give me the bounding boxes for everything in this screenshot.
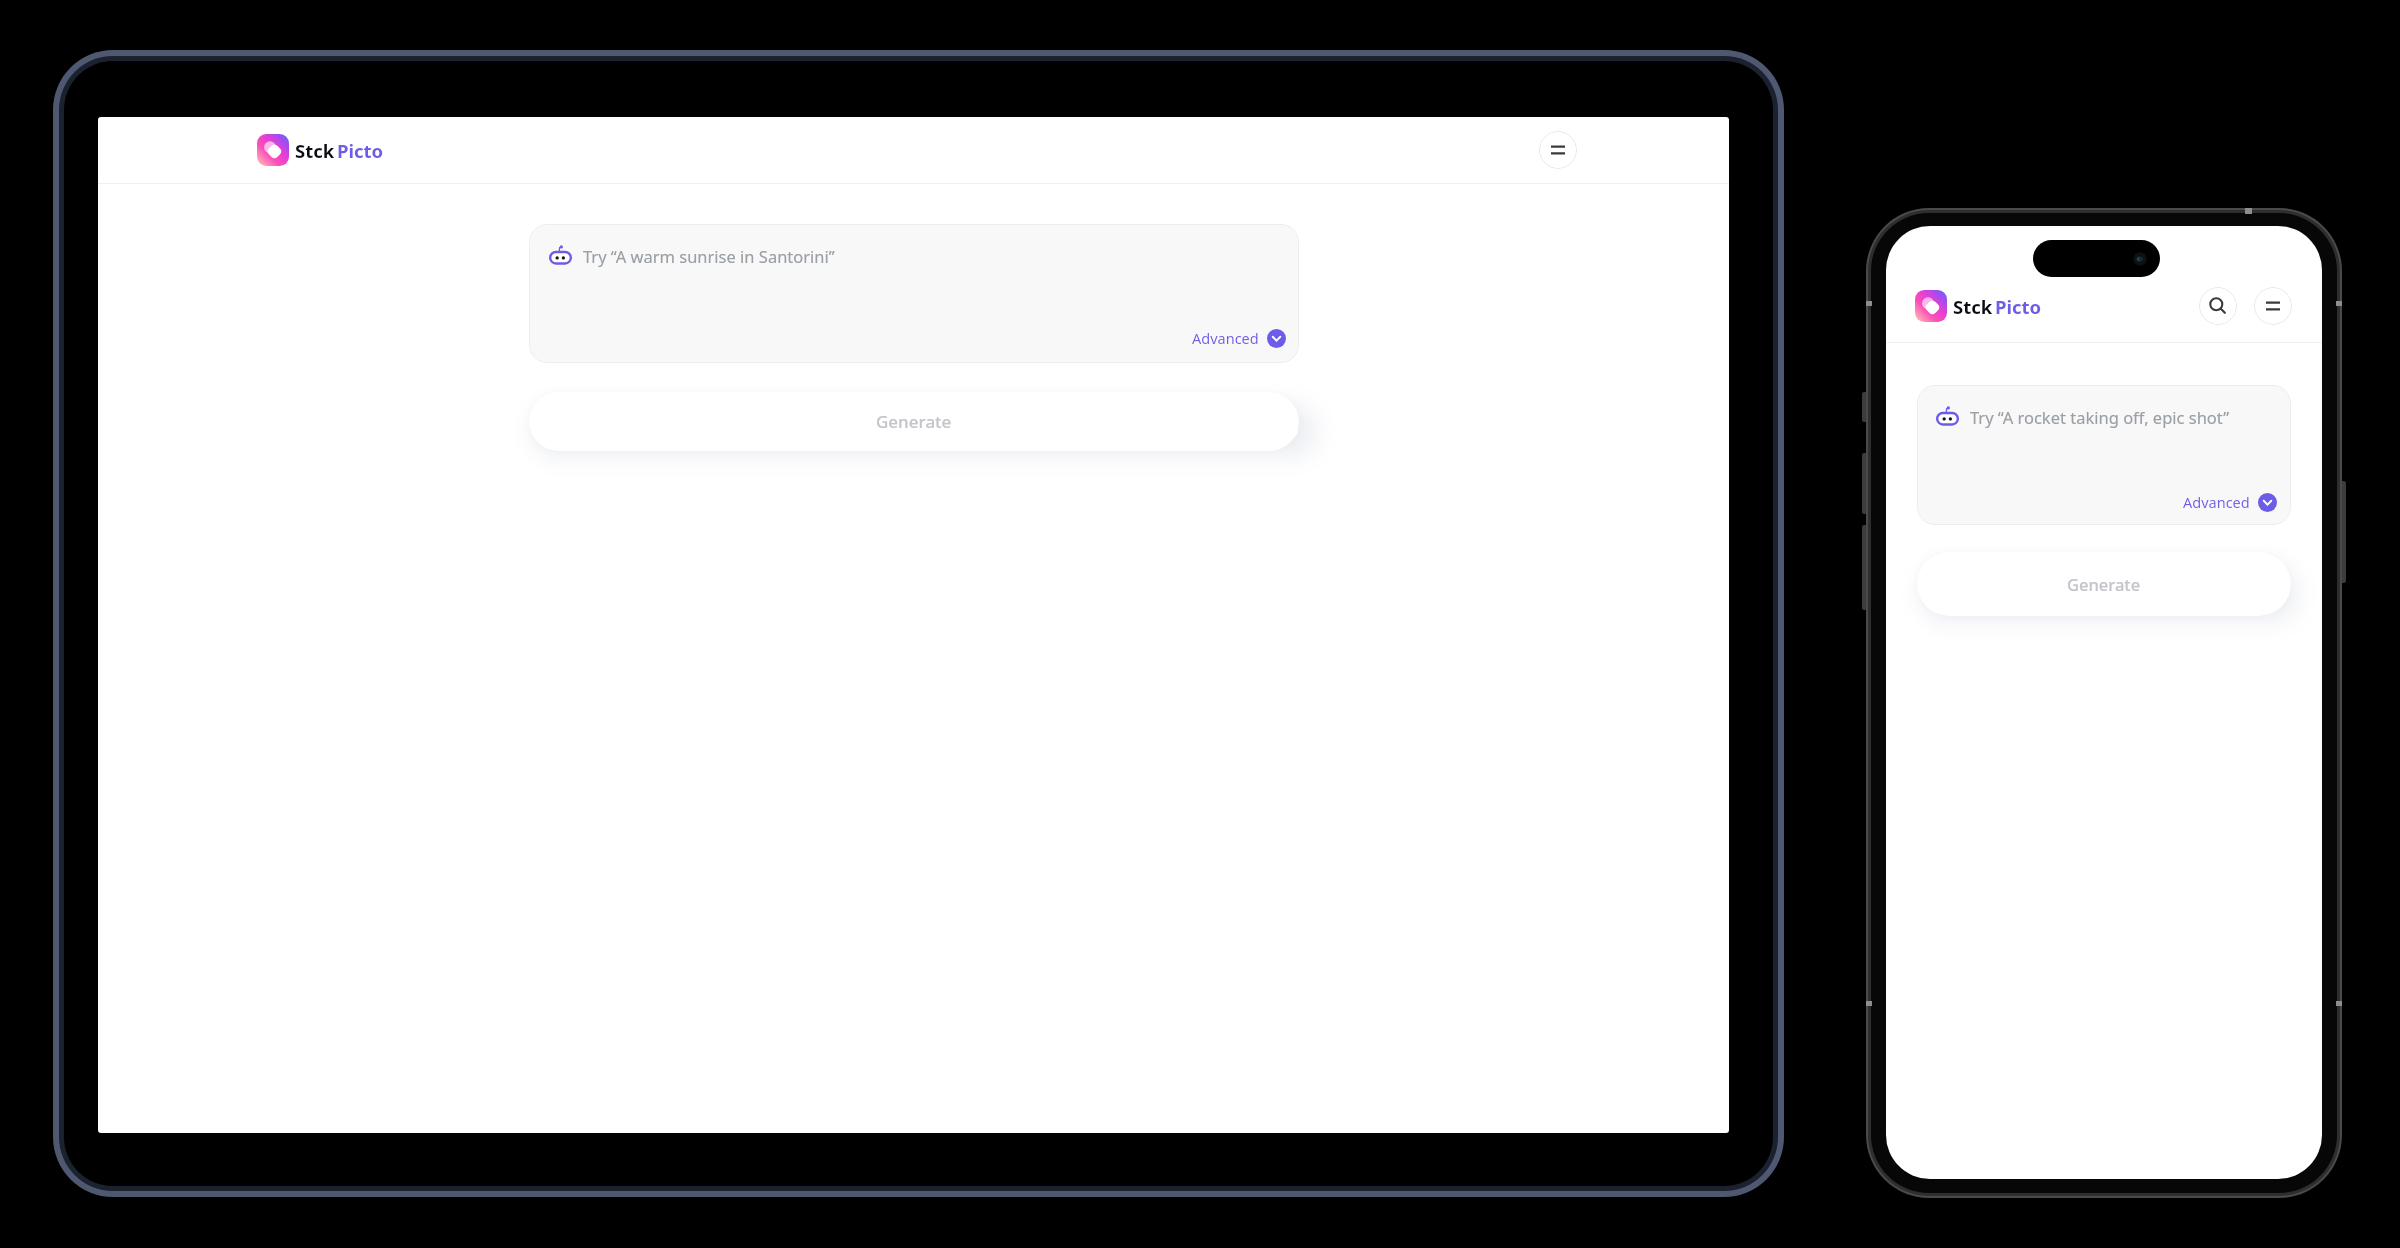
staticText: Generate (876, 410, 952, 433)
staticText: Stck (295, 138, 335, 163)
staticText: Stck (1953, 294, 1993, 319)
staticText: Advanced (1192, 328, 1259, 348)
button[interactable]: Menu (1539, 131, 1577, 169)
button[interactable]: Try “A warm sunrise in Santorini” (529, 224, 1299, 363)
button[interactable]: Stck (1915, 290, 2042, 322)
staticText: Generate (2067, 573, 2141, 595)
button[interactable]: Generate (529, 392, 1299, 451)
button[interactable]: Advanced (2183, 492, 2277, 512)
button[interactable]: Search (2199, 287, 2237, 325)
button[interactable]: Try “A rocket taking off, epic shot” (1917, 385, 2291, 525)
button[interactable]: Menu (2254, 287, 2292, 325)
button[interactable]: Generate (1917, 552, 2291, 616)
staticText: Try “A rocket taking off, epic shot” (1970, 406, 2230, 428)
button[interactable]: Stck (257, 134, 384, 166)
staticText: Picto (1995, 294, 2042, 319)
staticText: Picto (337, 138, 384, 163)
staticText: Advanced (2183, 492, 2250, 512)
staticText: Try “A warm sunrise in Santorini” (583, 245, 835, 267)
button[interactable]: Advanced (1192, 328, 1286, 348)
